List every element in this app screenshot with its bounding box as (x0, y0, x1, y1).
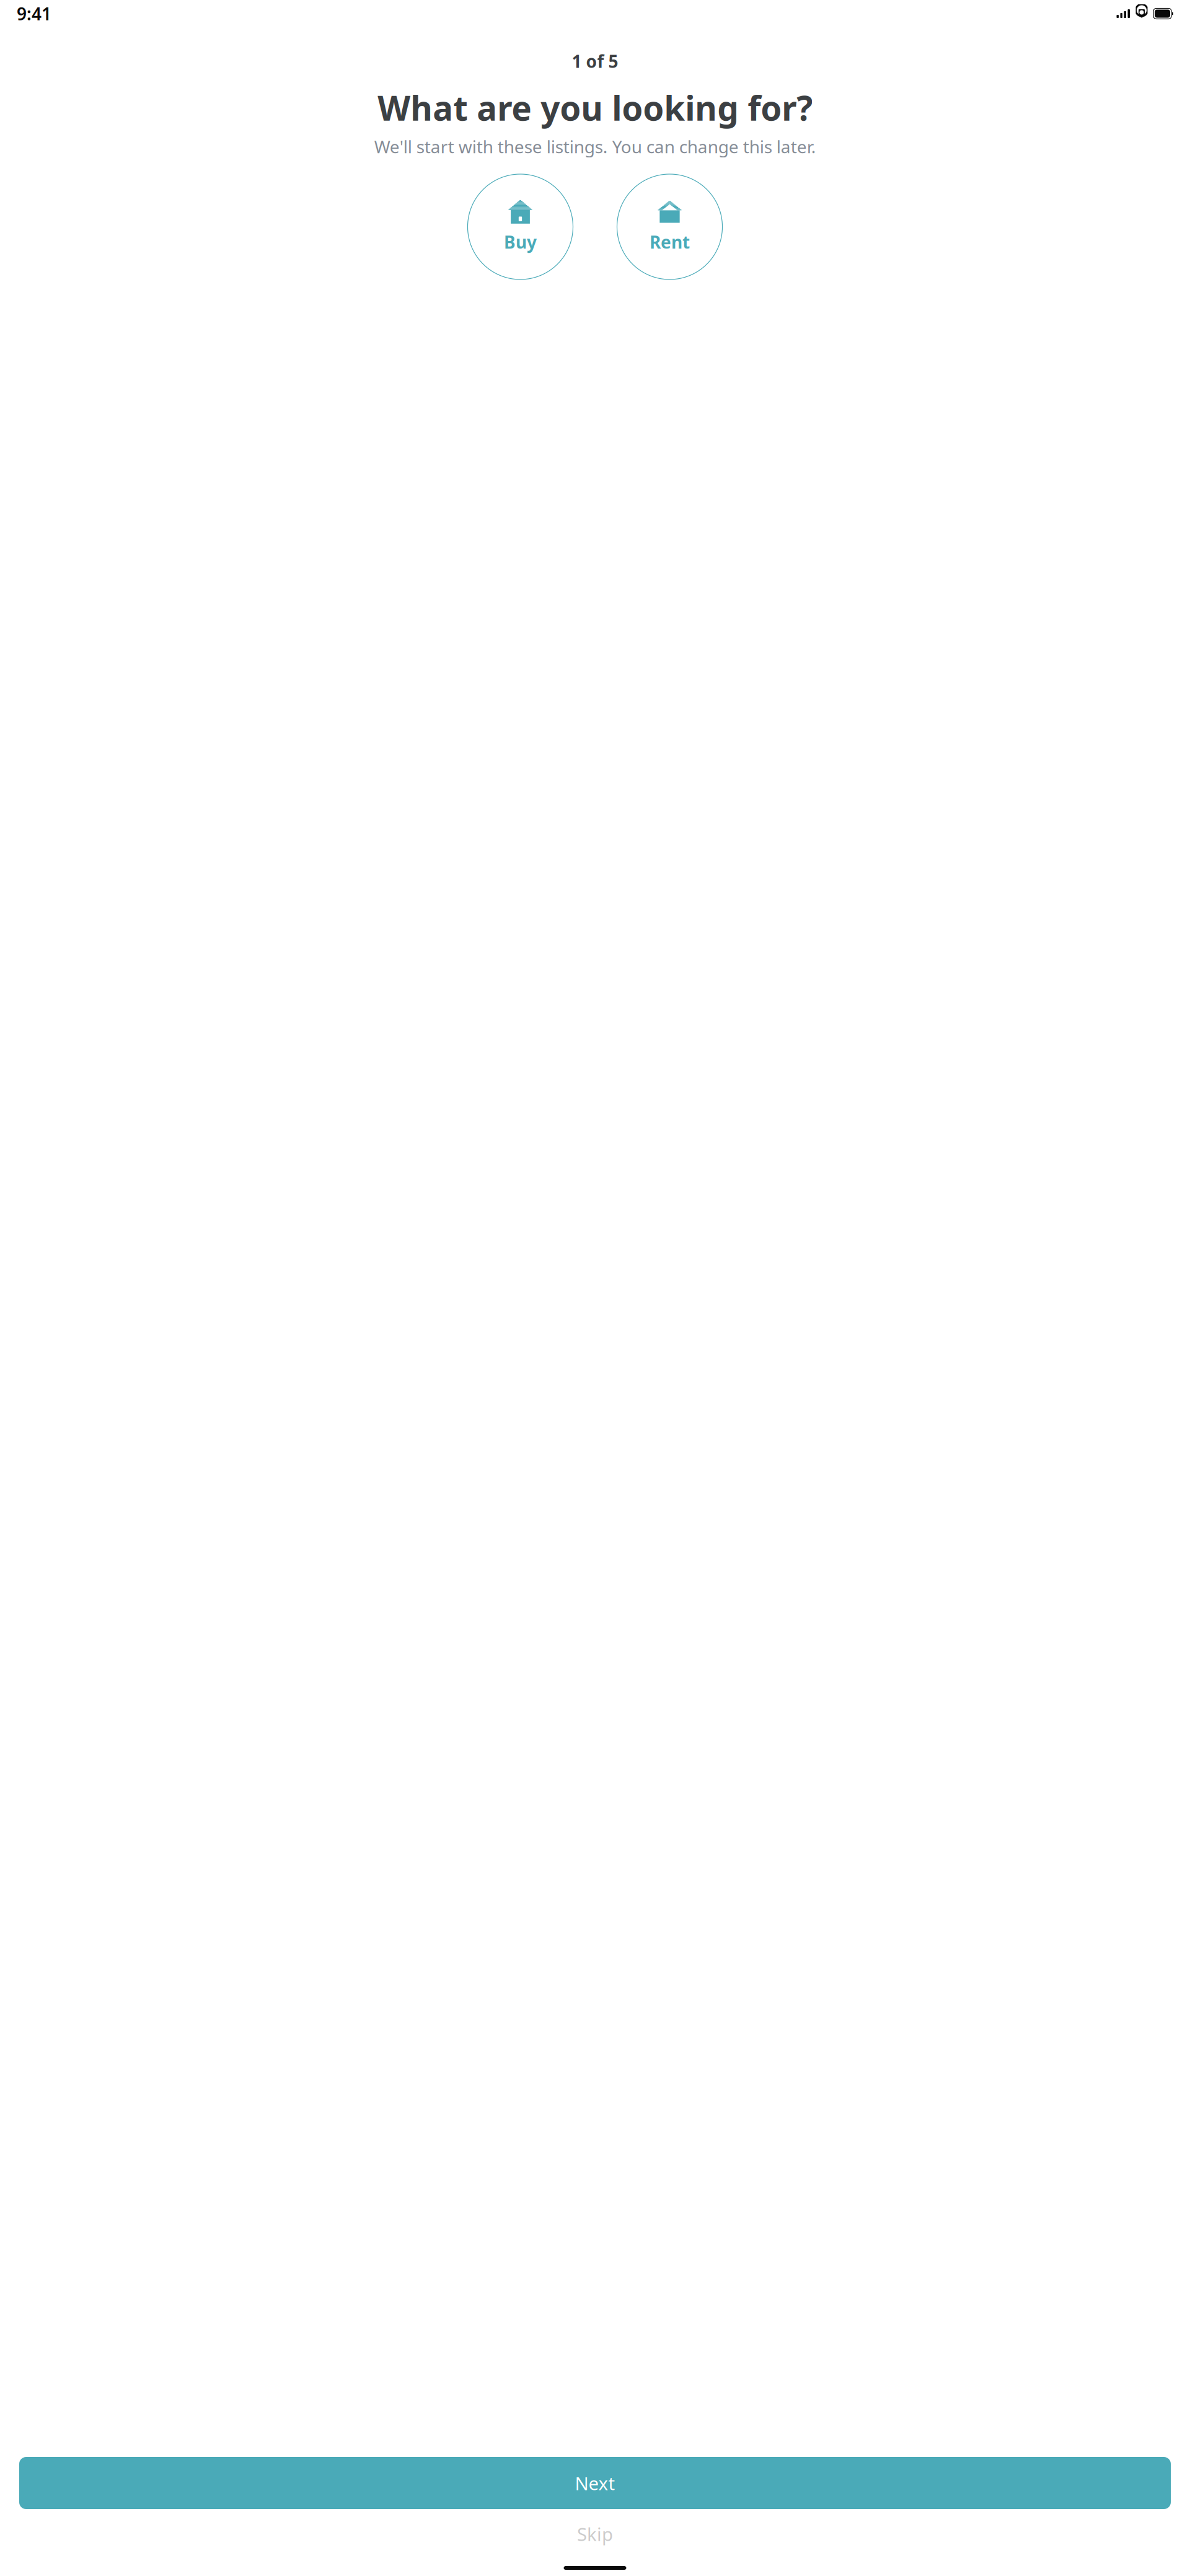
staticText: Skip (577, 2522, 613, 2546)
button[interactable]: Next (19, 2457, 1171, 2509)
button[interactable]: Buy (468, 174, 573, 279)
button[interactable]: Rent (617, 174, 722, 279)
staticText: 1 of 5 (572, 50, 618, 73)
staticText: Rent (650, 230, 690, 254)
staticText: Buy (504, 230, 537, 254)
staticText: 9:41 (17, 2, 51, 25)
staticText: What are you looking for? (377, 85, 813, 130)
staticText: We'll start with these listings. You can… (374, 135, 816, 158)
staticText: Next (575, 2471, 615, 2495)
